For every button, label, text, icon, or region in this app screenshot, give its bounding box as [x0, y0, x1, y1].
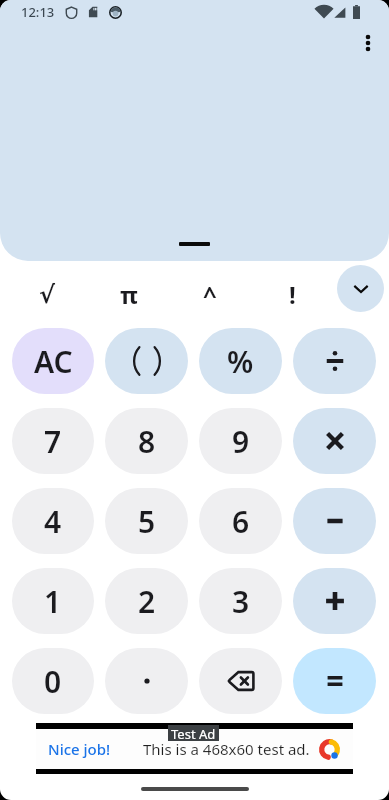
staticText: 12:13	[21, 3, 55, 21]
button[interactable]: 3	[199, 568, 282, 634]
staticText: 8	[138, 421, 156, 462]
button[interactable]: 7	[12, 408, 94, 474]
staticText: ^	[203, 278, 217, 311]
button[interactable]: ^	[169, 261, 251, 328]
staticText: 4	[44, 501, 62, 542]
button[interactable]: More options	[349, 24, 387, 62]
button[interactable]: 9	[199, 408, 282, 474]
staticText: 3	[232, 581, 250, 622]
button[interactable]: Backspace	[199, 648, 282, 714]
button[interactable]: %	[199, 328, 282, 394]
button[interactable]: Plus	[293, 568, 376, 634]
button[interactable]: Decimal point	[105, 648, 188, 714]
button[interactable]: Nice job!	[36, 729, 353, 769]
button[interactable]: √	[7, 261, 88, 328]
staticText: Test Ad	[171, 725, 216, 741]
staticText: Nice job!	[48, 739, 111, 759]
staticText: 5	[138, 501, 156, 542]
staticText: This is a 468x60 test ad.	[143, 739, 310, 759]
button[interactable]: !	[251, 261, 333, 328]
staticText: π	[120, 278, 138, 311]
staticText: AC	[34, 341, 73, 382]
button[interactable]: Expand keypad	[337, 265, 384, 312]
staticText: %	[227, 341, 254, 382]
button[interactable]: 4	[12, 488, 94, 554]
button[interactable]: 5	[105, 488, 188, 554]
button[interactable]: Minus	[293, 488, 376, 554]
staticText: 6	[232, 501, 250, 542]
button[interactable]: Equals	[293, 648, 376, 714]
staticText: √	[39, 281, 56, 309]
button[interactable]: AC	[12, 328, 94, 394]
button[interactable]: 0	[12, 648, 94, 714]
staticText: 0	[44, 661, 62, 702]
staticText: 1	[44, 581, 62, 622]
button[interactable]: 2	[105, 568, 188, 634]
button[interactable]: π	[88, 261, 169, 328]
button[interactable]: Multiply	[293, 408, 376, 474]
button[interactable]: 6	[199, 488, 282, 554]
staticText: 2	[138, 581, 156, 622]
button[interactable]: Divide	[293, 328, 376, 394]
staticText: 7	[44, 421, 62, 462]
staticText: 9	[232, 421, 250, 462]
button[interactable]: 1	[12, 568, 94, 634]
button[interactable]: 8	[105, 408, 188, 474]
staticText: !	[289, 278, 296, 311]
button[interactable]: Parentheses	[105, 328, 188, 394]
